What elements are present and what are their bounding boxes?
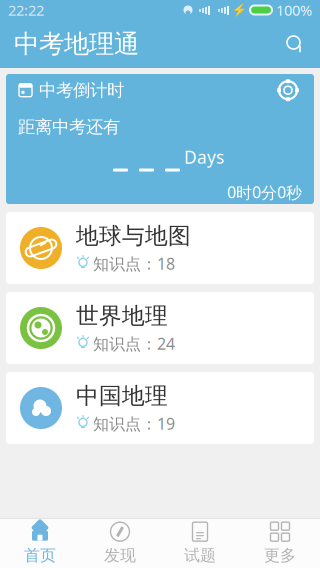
staticText: 地球与地图	[76, 222, 191, 250]
button[interactable]: 中国地理	[6, 372, 314, 444]
button[interactable]: 发现	[80, 518, 160, 568]
button[interactable]: 世界地理	[6, 292, 314, 364]
staticText: 中考倒计时	[39, 80, 124, 101]
staticText: 首页	[24, 546, 56, 565]
staticText: 知识点：24	[93, 333, 175, 354]
staticText: Days	[184, 145, 224, 168]
staticText: 22:22	[8, 0, 44, 20]
staticText: 中国地理	[76, 382, 168, 410]
staticText: 知识点：18	[93, 253, 175, 274]
button[interactable]: 试题	[160, 518, 240, 568]
button[interactable]: Search	[278, 27, 312, 61]
staticText: 发现	[104, 546, 136, 565]
staticText: 世界地理	[76, 302, 168, 330]
button[interactable]: 首页	[0, 518, 80, 568]
staticText: 100%	[276, 0, 312, 20]
staticText: 知识点：19	[93, 413, 175, 434]
staticText: 中考地理通	[14, 28, 139, 59]
staticText: 距离中考还有	[18, 116, 120, 137]
button[interactable]: 地球与地图	[6, 212, 314, 284]
staticText: ⚡	[232, 3, 247, 17]
button[interactable]: Settings	[274, 76, 302, 104]
staticText: 更多	[264, 546, 296, 565]
button[interactable]: 更多	[240, 518, 320, 568]
staticText: 试题	[184, 546, 216, 565]
staticText: 0时0分0秒	[227, 181, 302, 203]
